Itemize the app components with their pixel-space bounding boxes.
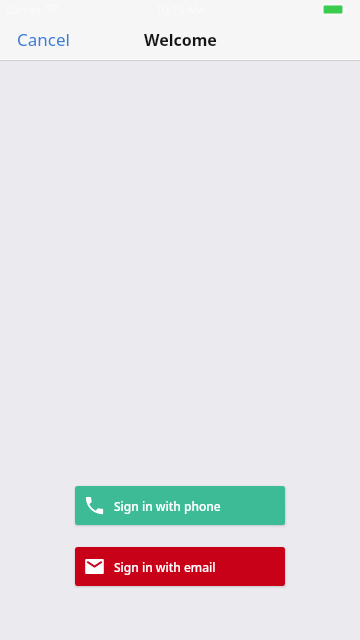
staticText: Sign in with phone	[114, 498, 221, 514]
staticText: Cancel	[17, 28, 70, 51]
button[interactable]: Email	[75, 547, 285, 586]
other: Phone	[83, 494, 106, 517]
other: Email	[85, 557, 104, 576]
other: Battery full	[322, 4, 346, 15]
staticText: Welcome	[144, 29, 217, 51]
staticText: Sign in with email	[114, 559, 216, 575]
button[interactable]: Cancel	[10, 22, 77, 57]
button[interactable]: Phone	[75, 486, 285, 525]
